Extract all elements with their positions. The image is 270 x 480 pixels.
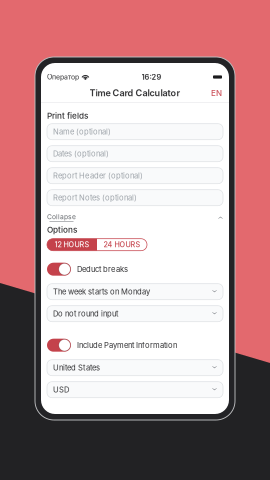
- button[interactable]: USD: [47, 382, 223, 398]
- button[interactable]: Dates (optional): [47, 146, 223, 162]
- button[interactable]: 24 HOURS: [97, 239, 147, 251]
- button[interactable]: Name (optional): [47, 124, 223, 140]
- button[interactable]: United States: [47, 360, 223, 376]
- staticText: Оператор: [47, 73, 79, 81]
- staticText: 24 HOURS: [103, 240, 140, 249]
- staticText: Report Notes (optional): [53, 193, 137, 202]
- staticText: United States: [53, 363, 100, 372]
- staticText: 16:29: [141, 72, 161, 81]
- button[interactable]: Deduct breaks: [47, 263, 223, 276]
- button[interactable]: 12 HOURS: [47, 239, 97, 251]
- button[interactable]: Collapse: [47, 213, 76, 222]
- staticText: Include Payment Information: [77, 341, 177, 350]
- staticText: EN: [211, 88, 222, 98]
- button[interactable]: Report Header (optional): [47, 168, 223, 184]
- staticText: 12 HOURS: [54, 240, 89, 249]
- staticText: Name (optional): [53, 127, 111, 136]
- button[interactable]: EN: [206, 85, 229, 101]
- staticText: Report Header (optional): [53, 171, 143, 180]
- staticText: Print fields: [47, 111, 88, 121]
- staticText: Collapse: [47, 213, 76, 221]
- staticText: Dates (optional): [53, 149, 109, 158]
- button[interactable]: Report Notes (optional): [47, 190, 223, 206]
- staticText: Deduct breaks: [77, 265, 128, 274]
- button[interactable]: Include Payment Information: [47, 339, 223, 352]
- staticText: Time Card Calculator: [89, 87, 180, 98]
- button[interactable]: The week starts on Monday: [47, 284, 223, 300]
- staticText: The week starts on Monday: [53, 287, 150, 296]
- staticText: USD: [53, 385, 69, 394]
- staticText: Do not round input: [53, 309, 118, 318]
- staticText: Options: [47, 225, 77, 235]
- button[interactable]: Do not round input: [47, 306, 223, 322]
